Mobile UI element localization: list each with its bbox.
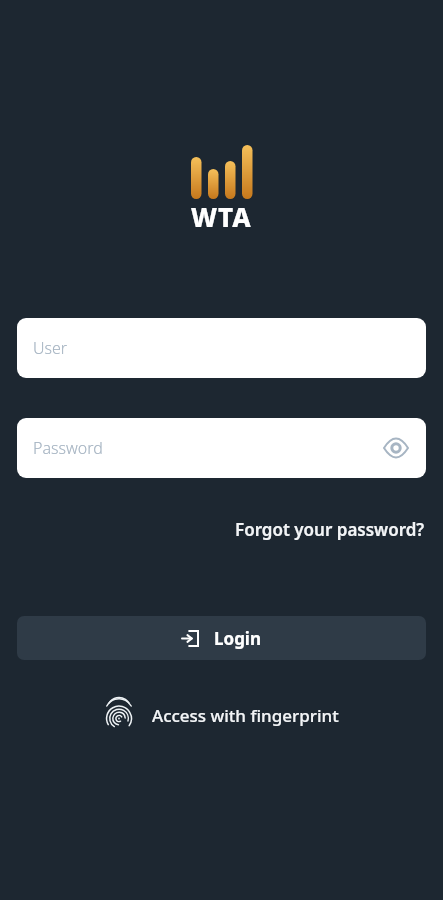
staticText: Login	[214, 627, 262, 650]
staticText: Forgot your password?	[235, 518, 425, 541]
button[interactable]: User	[17, 318, 426, 378]
staticText: Access with fingerprint	[152, 704, 339, 727]
button[interactable]: Login	[17, 616, 426, 660]
staticText: WTA	[191, 199, 252, 234]
button[interactable]: Password	[17, 418, 426, 478]
staticText: Password	[33, 437, 103, 459]
staticText: User	[33, 337, 68, 359]
button[interactable]: Access with fingerprint	[104, 698, 339, 732]
button[interactable]: Forgot your password?	[0, 518, 425, 541]
